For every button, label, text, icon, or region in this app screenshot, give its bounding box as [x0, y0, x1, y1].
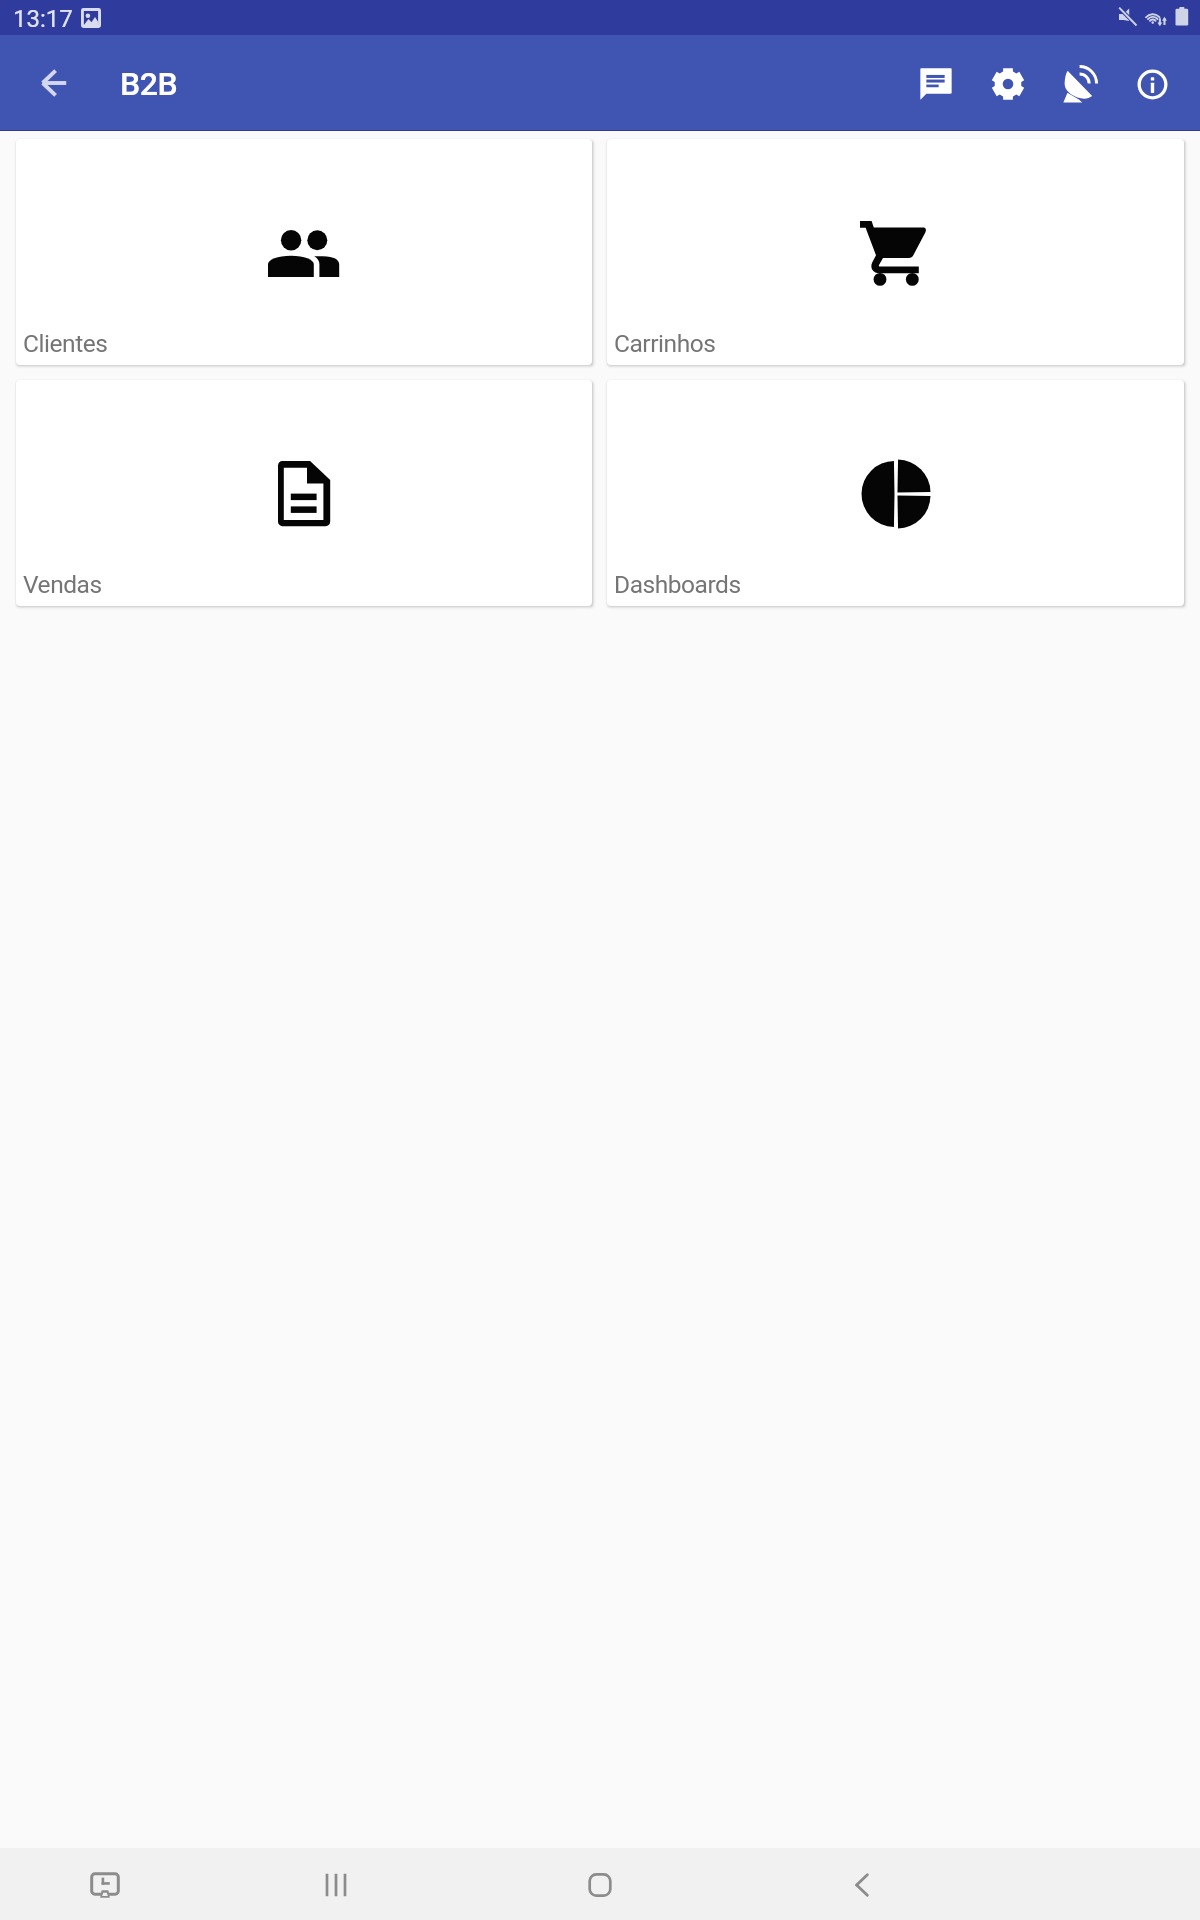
staticText: 13:17: [13, 5, 73, 33]
button[interactable]: Info: [1116, 48, 1188, 120]
button[interactable]: Satellite: [1044, 48, 1116, 120]
staticText: B2B: [120, 65, 178, 103]
staticText: Vendas: [23, 570, 102, 599]
button[interactable]: Clientes: [16, 139, 592, 365]
button[interactable]: Back: [18, 47, 90, 119]
staticText: Dashboards: [614, 570, 741, 599]
button[interactable]: Vendas: [16, 380, 592, 606]
button[interactable]: Carrinhos: [607, 139, 1184, 365]
staticText: Clientes: [23, 329, 108, 358]
button[interactable]: Back: [826, 1848, 898, 1920]
staticText: Carrinhos: [614, 329, 716, 358]
button[interactable]: Recents: [300, 1848, 372, 1920]
button[interactable]: Messages: [900, 48, 972, 120]
button[interactable]: Settings: [972, 48, 1044, 120]
button[interactable]: Home: [564, 1848, 636, 1920]
button[interactable]: Screen timeout: [69, 1848, 141, 1920]
button[interactable]: Dashboards: [607, 380, 1184, 606]
